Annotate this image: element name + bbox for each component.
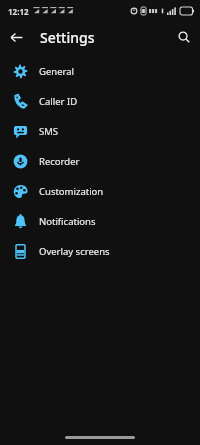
staticText: Caller ID — [39, 95, 78, 108]
button[interactable]: SMS — [0, 116, 200, 146]
staticText: Customization — [39, 185, 104, 198]
staticText: 12:12 — [8, 6, 29, 17]
button[interactable]: Notifications — [0, 206, 200, 236]
staticText: General — [39, 65, 75, 78]
button[interactable]: Overlay screens — [0, 236, 200, 266]
button[interactable]: General — [0, 56, 200, 86]
staticText: SMS — [39, 125, 59, 138]
button[interactable]: Customization — [0, 176, 200, 206]
staticText: Recorder — [39, 155, 80, 168]
button[interactable]: Search — [172, 25, 196, 49]
staticText: Overlay screens — [39, 245, 110, 258]
staticText: Settings — [40, 28, 95, 47]
button[interactable]: Back — [4, 25, 28, 49]
staticText: Notifications — [39, 215, 96, 228]
button[interactable]: Caller ID — [0, 86, 200, 116]
button[interactable]: Recorder — [0, 146, 200, 176]
